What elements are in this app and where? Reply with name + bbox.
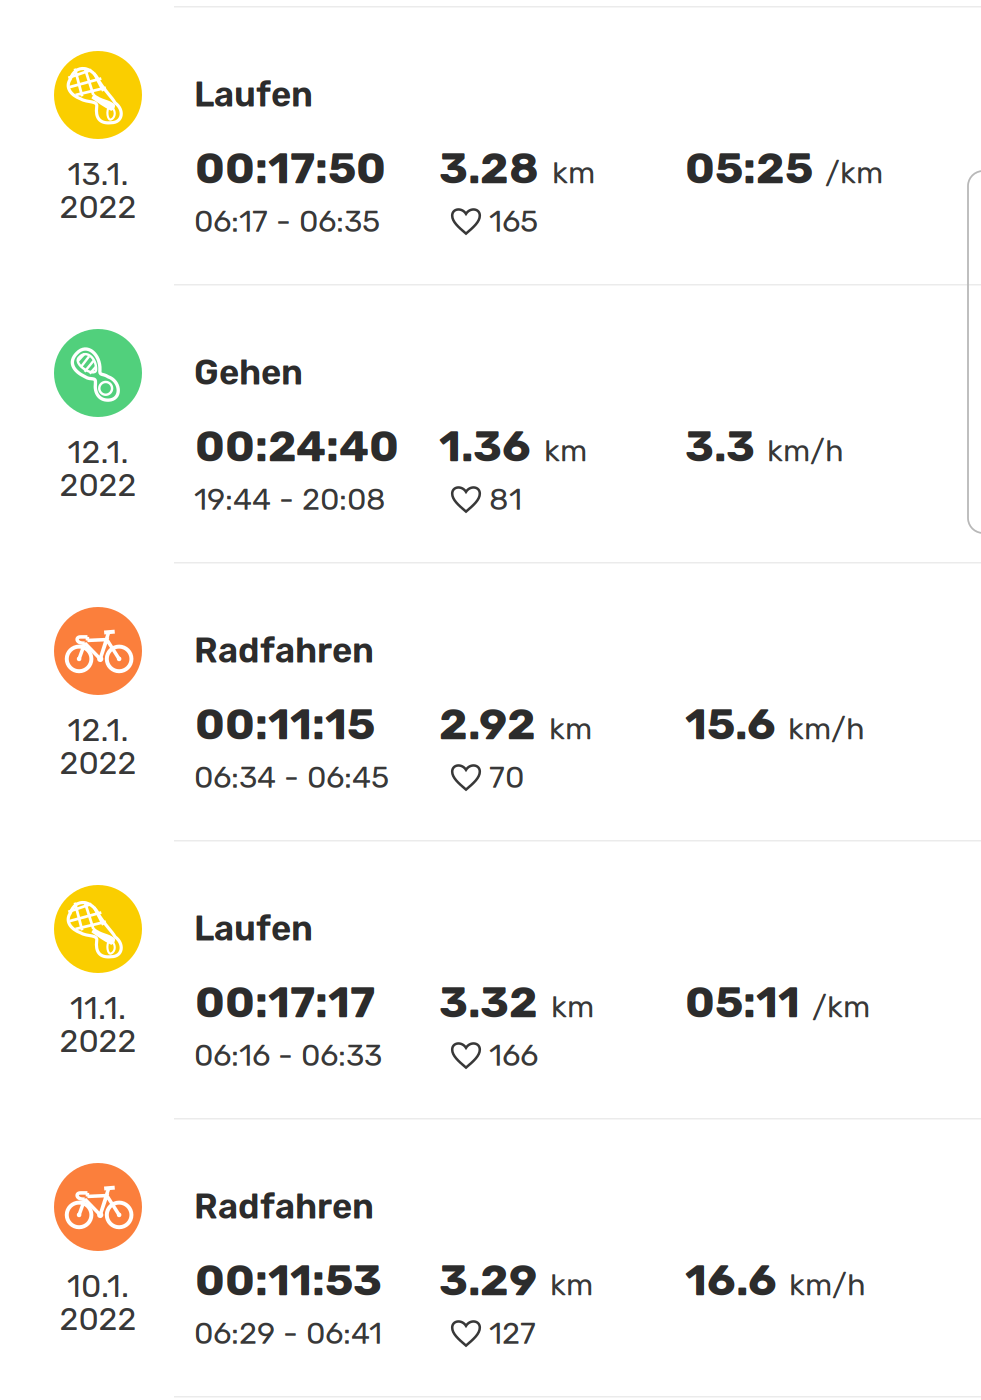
staticText: km/h (767, 432, 844, 469)
staticText: 13.1. (67, 155, 128, 193)
button[interactable]: 12.1. (0, 284, 981, 562)
staticText: /km (812, 988, 870, 1025)
staticText: 3.3 (685, 420, 755, 472)
staticText: Radfahren (194, 630, 374, 671)
staticText: 06:16 - 06:33 (194, 1037, 382, 1073)
staticText: 127 (489, 1315, 536, 1351)
staticText: 00:11:53 (195, 1254, 382, 1306)
staticText: 11.1. (70, 989, 126, 1027)
button[interactable]: 10.1. (0, 1118, 981, 1396)
staticText: 12.1. (67, 433, 128, 471)
staticText: 00:24:40 (195, 420, 399, 472)
staticText: 06:34 - 06:45 (194, 759, 389, 795)
staticText: 06:29 - 06:41 (194, 1315, 382, 1351)
staticText: Radfahren (194, 1186, 374, 1227)
staticText: 2022 (59, 188, 136, 226)
staticText: 15.6 (685, 698, 776, 750)
staticText: 00:11:15 (195, 698, 375, 750)
staticText: 12.1. (67, 711, 128, 749)
staticText: 3.28 (439, 142, 539, 194)
staticText: Laufen (194, 74, 313, 115)
staticText: 00:17:17 (195, 976, 375, 1028)
staticText: 1.36 (439, 420, 531, 472)
staticText: km (544, 432, 587, 469)
staticText: 19:44 - 20:08 (194, 481, 386, 517)
staticText: km/h (789, 1266, 866, 1303)
staticText: 2022 (59, 744, 136, 782)
staticText: km (549, 710, 592, 747)
staticText: 05:25 (685, 142, 813, 194)
staticText: 2.92 (439, 698, 536, 750)
staticText: 3.32 (439, 976, 538, 1028)
staticText: 81 (489, 481, 522, 517)
staticText: /km (825, 154, 883, 191)
staticText: km/h (788, 710, 865, 747)
staticText: 2022 (59, 466, 136, 504)
staticText: 05:11 (685, 976, 800, 1028)
staticText: 165 (489, 203, 538, 239)
staticText: 70 (489, 759, 524, 795)
staticText: 2022 (59, 1022, 136, 1060)
staticText: 06:17 - 06:35 (194, 203, 380, 239)
staticText: Laufen (194, 908, 313, 949)
staticText: 16.6 (685, 1254, 777, 1306)
staticText: km (552, 154, 595, 191)
staticText: km (551, 988, 594, 1025)
button[interactable]: 12.1. (0, 562, 981, 840)
button[interactable]: 13.1. (0, 6, 981, 284)
staticText: Gehen (194, 352, 303, 393)
button[interactable]: 11.1. (0, 840, 981, 1118)
staticText: 2022 (59, 1300, 136, 1338)
staticText: 166 (489, 1037, 538, 1073)
staticText: 10.1. (67, 1267, 129, 1305)
staticText: km (550, 1266, 593, 1303)
staticText: 3.29 (439, 1254, 537, 1306)
staticText: 00:17:50 (195, 142, 386, 194)
